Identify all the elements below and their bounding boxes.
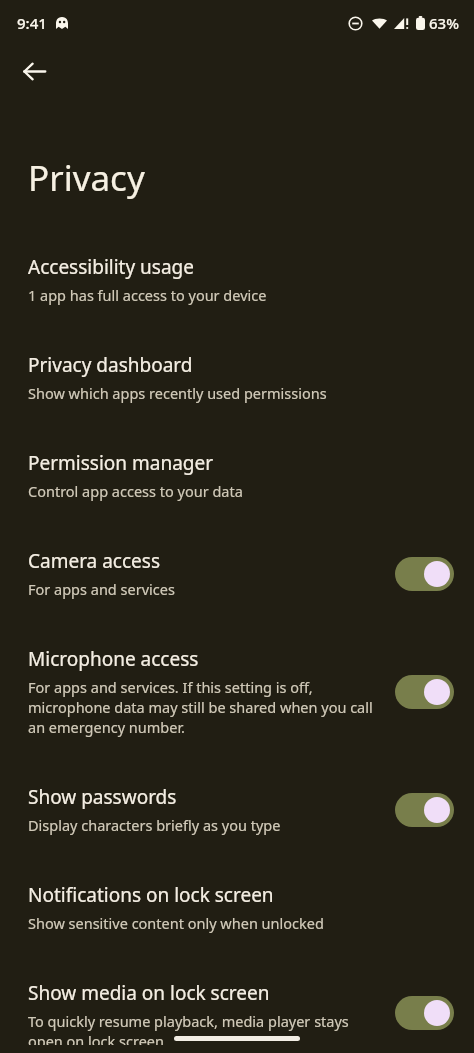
staticText: Control app access to your data [28,481,243,501]
staticText: To quickly resume playback, media player… [28,1011,381,1045]
staticText: Microphone access [28,646,199,672]
button[interactable]: Back [12,49,56,93]
button[interactable]: Permission manager [0,442,474,509]
staticText: For apps and services [28,579,175,599]
button[interactable]: Camera access [0,540,474,607]
button[interactable]: Toggle [395,557,454,591]
staticText: Camera access [28,548,161,574]
staticText: For apps and services. If this setting i… [28,677,381,737]
staticText: Show sensitive content only when unlocke… [28,913,324,933]
staticText: Privacy [28,154,145,202]
staticText: 1 app has full access to your device [28,285,267,305]
staticText: Notifications on lock screen [28,882,274,908]
staticText: Display characters briefly as you type [28,815,281,835]
button[interactable]: Toggle [395,793,454,827]
staticText: Show passwords [28,784,177,810]
button[interactable]: Privacy dashboard [0,344,474,411]
staticText: 63% [429,13,459,33]
staticText: 9:41 [17,13,47,33]
staticText: Show which apps recently used permission… [28,383,327,403]
staticText: Permission manager [28,450,214,476]
button[interactable]: Toggle [395,675,454,709]
button[interactable]: Notifications on lock screen [0,874,474,941]
button[interactable]: Microphone access [0,638,474,745]
button[interactable]: Show media on lock screen [0,972,474,1053]
staticText: Privacy dashboard [28,352,193,378]
staticText: Accessibility usage [28,254,194,280]
button[interactable]: Show passwords [0,776,474,843]
button[interactable]: Toggle [395,996,454,1030]
button[interactable]: Accessibility usage [0,246,474,313]
staticText: Show media on lock screen [28,980,270,1006]
